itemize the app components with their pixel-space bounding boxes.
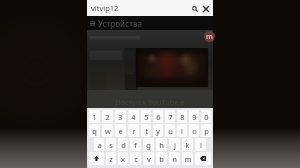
button[interactable]: p [201,124,211,137]
staticText: k [185,140,190,150]
staticText: z [109,154,113,164]
button[interactable]: u [165,124,175,137]
button[interactable]: Channel logo [204,31,215,42]
button[interactable]: 9 [189,110,199,123]
button[interactable]: q [89,124,100,137]
button[interactable]: 2 [102,110,113,123]
staticText: u [168,126,173,136]
button[interactable]: o [189,124,199,137]
staticText: r [132,126,136,136]
staticText: 3 [118,112,123,122]
button[interactable]: n [169,152,180,165]
staticText: 6 [156,112,161,122]
staticText: o [192,126,197,136]
staticText: y [156,126,160,136]
button[interactable]: 7 [165,110,175,123]
button[interactable]: a [94,138,104,151]
staticText: n [172,154,177,164]
button[interactable]: l [195,138,206,151]
staticText: d [121,140,126,150]
button[interactable]: 6 [153,110,163,123]
button[interactable]: w [102,124,113,137]
button[interactable]: Clear search [200,3,211,14]
staticText: Устройства [98,18,143,29]
staticText: 1 [92,112,97,122]
button[interactable]: c [130,152,141,165]
staticText: vitvip12 [91,3,119,13]
button[interactable]: 5 [141,110,151,123]
button[interactable]: r [128,124,139,137]
button[interactable]: f [130,138,141,151]
button[interactable]: x [118,152,128,165]
button[interactable]: v [143,152,154,165]
button[interactable]: h [156,138,167,151]
staticText: j [174,140,176,150]
staticText: q [92,126,97,136]
staticText: w [105,126,111,136]
button[interactable]: 1 [89,110,100,123]
button[interactable]: 4 [128,110,139,123]
button[interactable]: Shift [89,152,104,165]
staticText: f [134,140,137,150]
staticText: 5 [144,112,149,122]
staticText: g [146,140,151,150]
button[interactable]: g [143,138,154,151]
staticText: 2 [105,112,110,122]
button[interactable]: k [182,138,193,151]
staticText: 4 [131,112,136,122]
staticText: 7 [168,112,173,122]
staticText: i [181,126,183,136]
button[interactable]: j [169,138,180,151]
button[interactable]: m [182,152,193,165]
button[interactable]: 3 [115,110,126,123]
staticText: x [121,154,125,164]
button[interactable]: z [106,152,116,165]
staticText: a [97,140,102,150]
button[interactable]: s [106,138,116,151]
button[interactable]: d [118,138,128,151]
staticText: e [118,126,123,136]
staticText: p [204,126,209,136]
button[interactable]: 0 [201,110,211,123]
staticText: b [159,154,164,164]
staticText: l [200,140,202,150]
staticText: s [109,140,113,150]
button[interactable]: 8 [177,110,187,123]
button[interactable]: b [156,152,167,165]
staticText: Доступ к YouTube в [115,97,185,107]
staticText: c [134,154,138,164]
staticText: 8 [180,112,185,122]
staticText: 0 [204,112,209,122]
staticText: v [147,154,151,164]
staticText: m [184,154,192,164]
staticText: 9 [192,112,197,122]
staticText: t [145,126,148,136]
button[interactable]: e [115,124,126,137]
staticText: h [159,140,164,150]
button[interactable]: Устройства [87,16,213,30]
button[interactable]: y [153,124,163,137]
staticText: m [206,32,213,42]
button[interactable]: t [141,124,151,137]
button[interactable]: i [177,124,187,137]
button[interactable]: Backspace [195,152,211,165]
button[interactable]: Search [189,3,200,14]
